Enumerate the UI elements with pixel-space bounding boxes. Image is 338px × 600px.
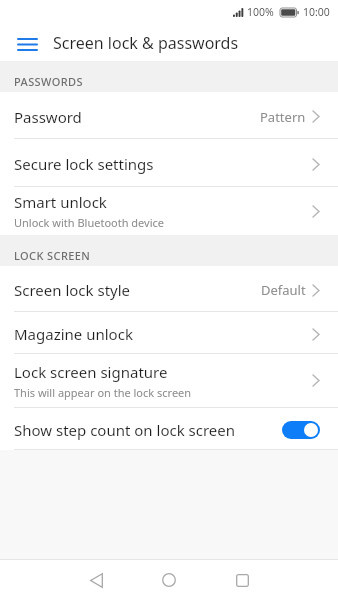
staticText: Screen lock style (14, 280, 131, 300)
staticText: Show step count on lock screen (14, 420, 236, 440)
staticText: Smart unlock (14, 192, 107, 212)
staticText: Default (261, 281, 306, 299)
staticText: This will appear on the lock screen (14, 385, 192, 400)
staticText: Lock screen signature (14, 362, 168, 382)
staticText: LOCK SCREEN (14, 248, 91, 263)
button[interactable]: Lock screen signature (0, 354, 338, 407)
staticText: Pattern (260, 108, 306, 126)
staticText: PASSWORDS (14, 74, 83, 89)
button[interactable]: Magazine unlock (0, 312, 338, 353)
staticText: 100% (247, 5, 274, 19)
button[interactable]: Screen lock style (0, 266, 338, 311)
button[interactable] (222, 560, 262, 600)
button[interactable] (9, 24, 45, 61)
staticText: Secure lock settings (14, 154, 154, 174)
staticText: Password (14, 107, 82, 127)
staticText: Screen lock & passwords (53, 32, 239, 54)
button[interactable] (76, 560, 116, 600)
button[interactable] (282, 421, 320, 439)
button[interactable]: Password (0, 92, 338, 138)
button[interactable]: Smart unlock (0, 187, 338, 235)
staticText: 10:00 (303, 5, 330, 19)
button[interactable]: Show step count on lock screen (0, 408, 338, 449)
button[interactable] (149, 560, 189, 600)
staticText: Magazine unlock (14, 324, 133, 344)
button[interactable]: Secure lock settings (0, 139, 338, 186)
staticText: Unlock with Bluetooth device (14, 215, 165, 230)
